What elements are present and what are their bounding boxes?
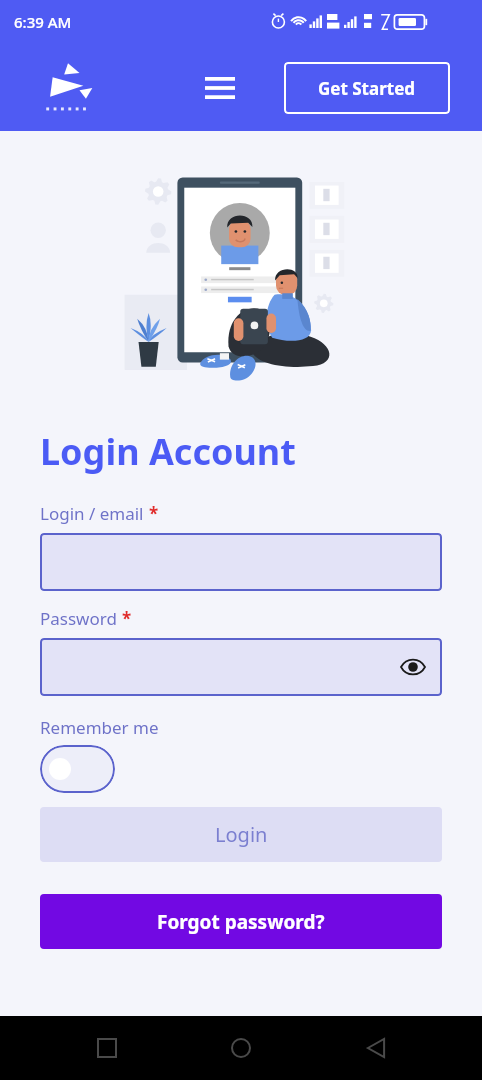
button[interactable]: Remember me toggle — [40, 745, 115, 793]
button[interactable]: Get Started — [284, 62, 450, 114]
button[interactable]: Show password — [398, 652, 428, 682]
staticText: Get Started — [318, 77, 416, 100]
button[interactable]: Advata logo — [36, 61, 100, 115]
staticText: Login Account — [40, 427, 296, 476]
button[interactable]: Menu — [194, 62, 246, 114]
button[interactable]: Login or email input — [40, 533, 442, 591]
button[interactable]: Forgot password? — [40, 894, 442, 949]
staticText: Login — [215, 821, 268, 848]
staticText: Remember me — [40, 716, 159, 739]
button[interactable]: Login — [40, 807, 442, 862]
button[interactable]: Back — [348, 1020, 404, 1076]
button[interactable]: Home — [213, 1020, 269, 1076]
staticText: 6:39 AM — [14, 12, 72, 32]
staticText: * — [122, 607, 132, 630]
button[interactable]: Recent apps — [79, 1020, 135, 1076]
button[interactable]: Password input — [40, 638, 442, 696]
staticText: Password — [40, 607, 117, 630]
staticText: * — [149, 502, 159, 525]
staticText: Forgot password? — [157, 909, 325, 935]
staticText: Login / email — [40, 502, 144, 525]
